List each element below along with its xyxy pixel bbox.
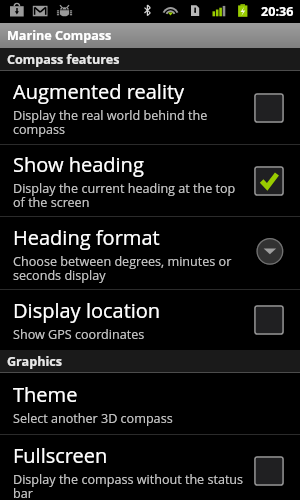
staticText: Heading format — [13, 224, 160, 251]
staticText: Select another 3D compass — [13, 410, 173, 427]
button[interactable]: Fullscreen — [0, 435, 300, 500]
button[interactable]: Toggle — [254, 305, 284, 335]
staticText: Choose between degrees, minutes or secon… — [13, 253, 245, 283]
staticText: Display location — [13, 297, 161, 324]
staticText: Theme — [13, 381, 78, 408]
button[interactable]: Display location — [0, 290, 300, 350]
button[interactable]: Toggle — [254, 93, 284, 123]
button[interactable]: Show heading — [0, 145, 300, 216]
staticText: Show GPS coordinates — [13, 326, 145, 343]
button[interactable]: Augmented reality — [0, 71, 300, 144]
staticText: Compass features — [7, 51, 120, 68]
button[interactable]: Theme — [0, 373, 300, 434]
button[interactable]: Toggle — [254, 456, 284, 486]
button[interactable]: Open list — [254, 236, 284, 266]
staticText: Augmented reality — [13, 78, 185, 105]
staticText: Fullscreen — [13, 442, 108, 469]
staticText: Graphics — [7, 353, 63, 370]
staticText: Display the real world behind the compas… — [13, 107, 245, 137]
staticText: Marine Compass — [7, 27, 112, 44]
staticText: Display the current heading at the top o… — [13, 180, 245, 210]
button[interactable]: Toggle — [254, 166, 284, 196]
staticText: 20:36 — [261, 3, 294, 20]
staticText: Show heading — [13, 151, 144, 178]
button[interactable]: Heading format — [0, 217, 300, 289]
staticText: Display the compass without the status b… — [13, 471, 245, 500]
